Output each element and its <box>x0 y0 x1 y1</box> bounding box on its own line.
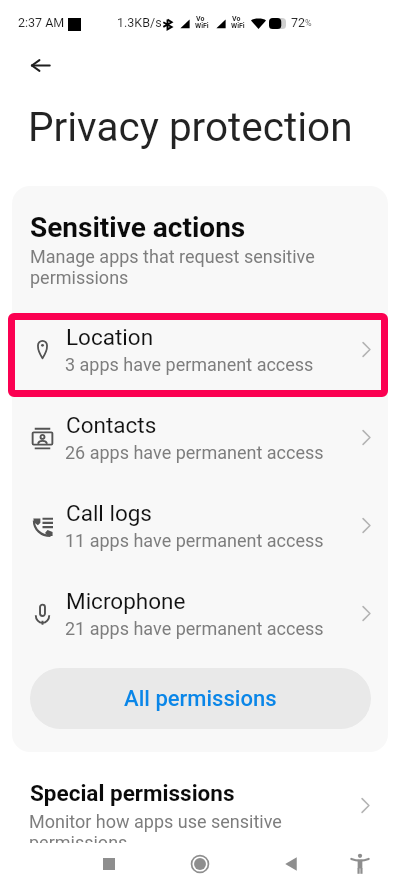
button[interactable]: Location <box>12 308 388 396</box>
staticText: WiFi <box>195 22 209 30</box>
staticText: % <box>305 18 312 29</box>
button[interactable]: Home <box>176 841 224 887</box>
staticText: 26 apps have permanent access <box>65 442 324 463</box>
staticText: 3 apps have permanent access <box>65 354 314 375</box>
staticText: Call logs <box>66 500 152 526</box>
button[interactable]: All permissions <box>30 668 371 729</box>
staticText: Microphone <box>66 588 186 614</box>
button[interactable]: Back <box>16 41 64 89</box>
staticText: Contacts <box>66 412 157 438</box>
staticText: Special permissions <box>30 780 235 806</box>
staticText: Vo <box>196 15 205 23</box>
staticText: Location <box>66 324 154 350</box>
staticText: Vo <box>232 15 241 23</box>
button[interactable]: Recent apps <box>85 841 133 887</box>
button[interactable]: Back <box>267 841 315 887</box>
staticText: 1.3KB/s <box>117 15 162 30</box>
staticText: Manage apps that request sensitive permi… <box>30 246 330 288</box>
staticText: 11 apps have permanent access <box>65 530 324 551</box>
staticText: 72 <box>291 15 306 30</box>
button[interactable]: Contacts <box>12 396 388 484</box>
staticText: 21 apps have permanent access <box>65 618 324 639</box>
button[interactable]: Special permissions <box>0 772 400 843</box>
staticText: 2:37 AM <box>18 15 65 30</box>
button[interactable]: Accessibility <box>336 841 384 887</box>
button[interactable]: Call logs <box>12 484 388 572</box>
staticText: All permissions <box>124 686 277 712</box>
button[interactable]: Microphone <box>12 572 388 660</box>
staticText: Privacy protection <box>28 103 353 150</box>
staticText: Monitor how apps use sensitive permissio… <box>29 811 319 843</box>
staticText: Sensitive actions <box>30 211 246 244</box>
staticText: WiFi <box>231 22 245 30</box>
